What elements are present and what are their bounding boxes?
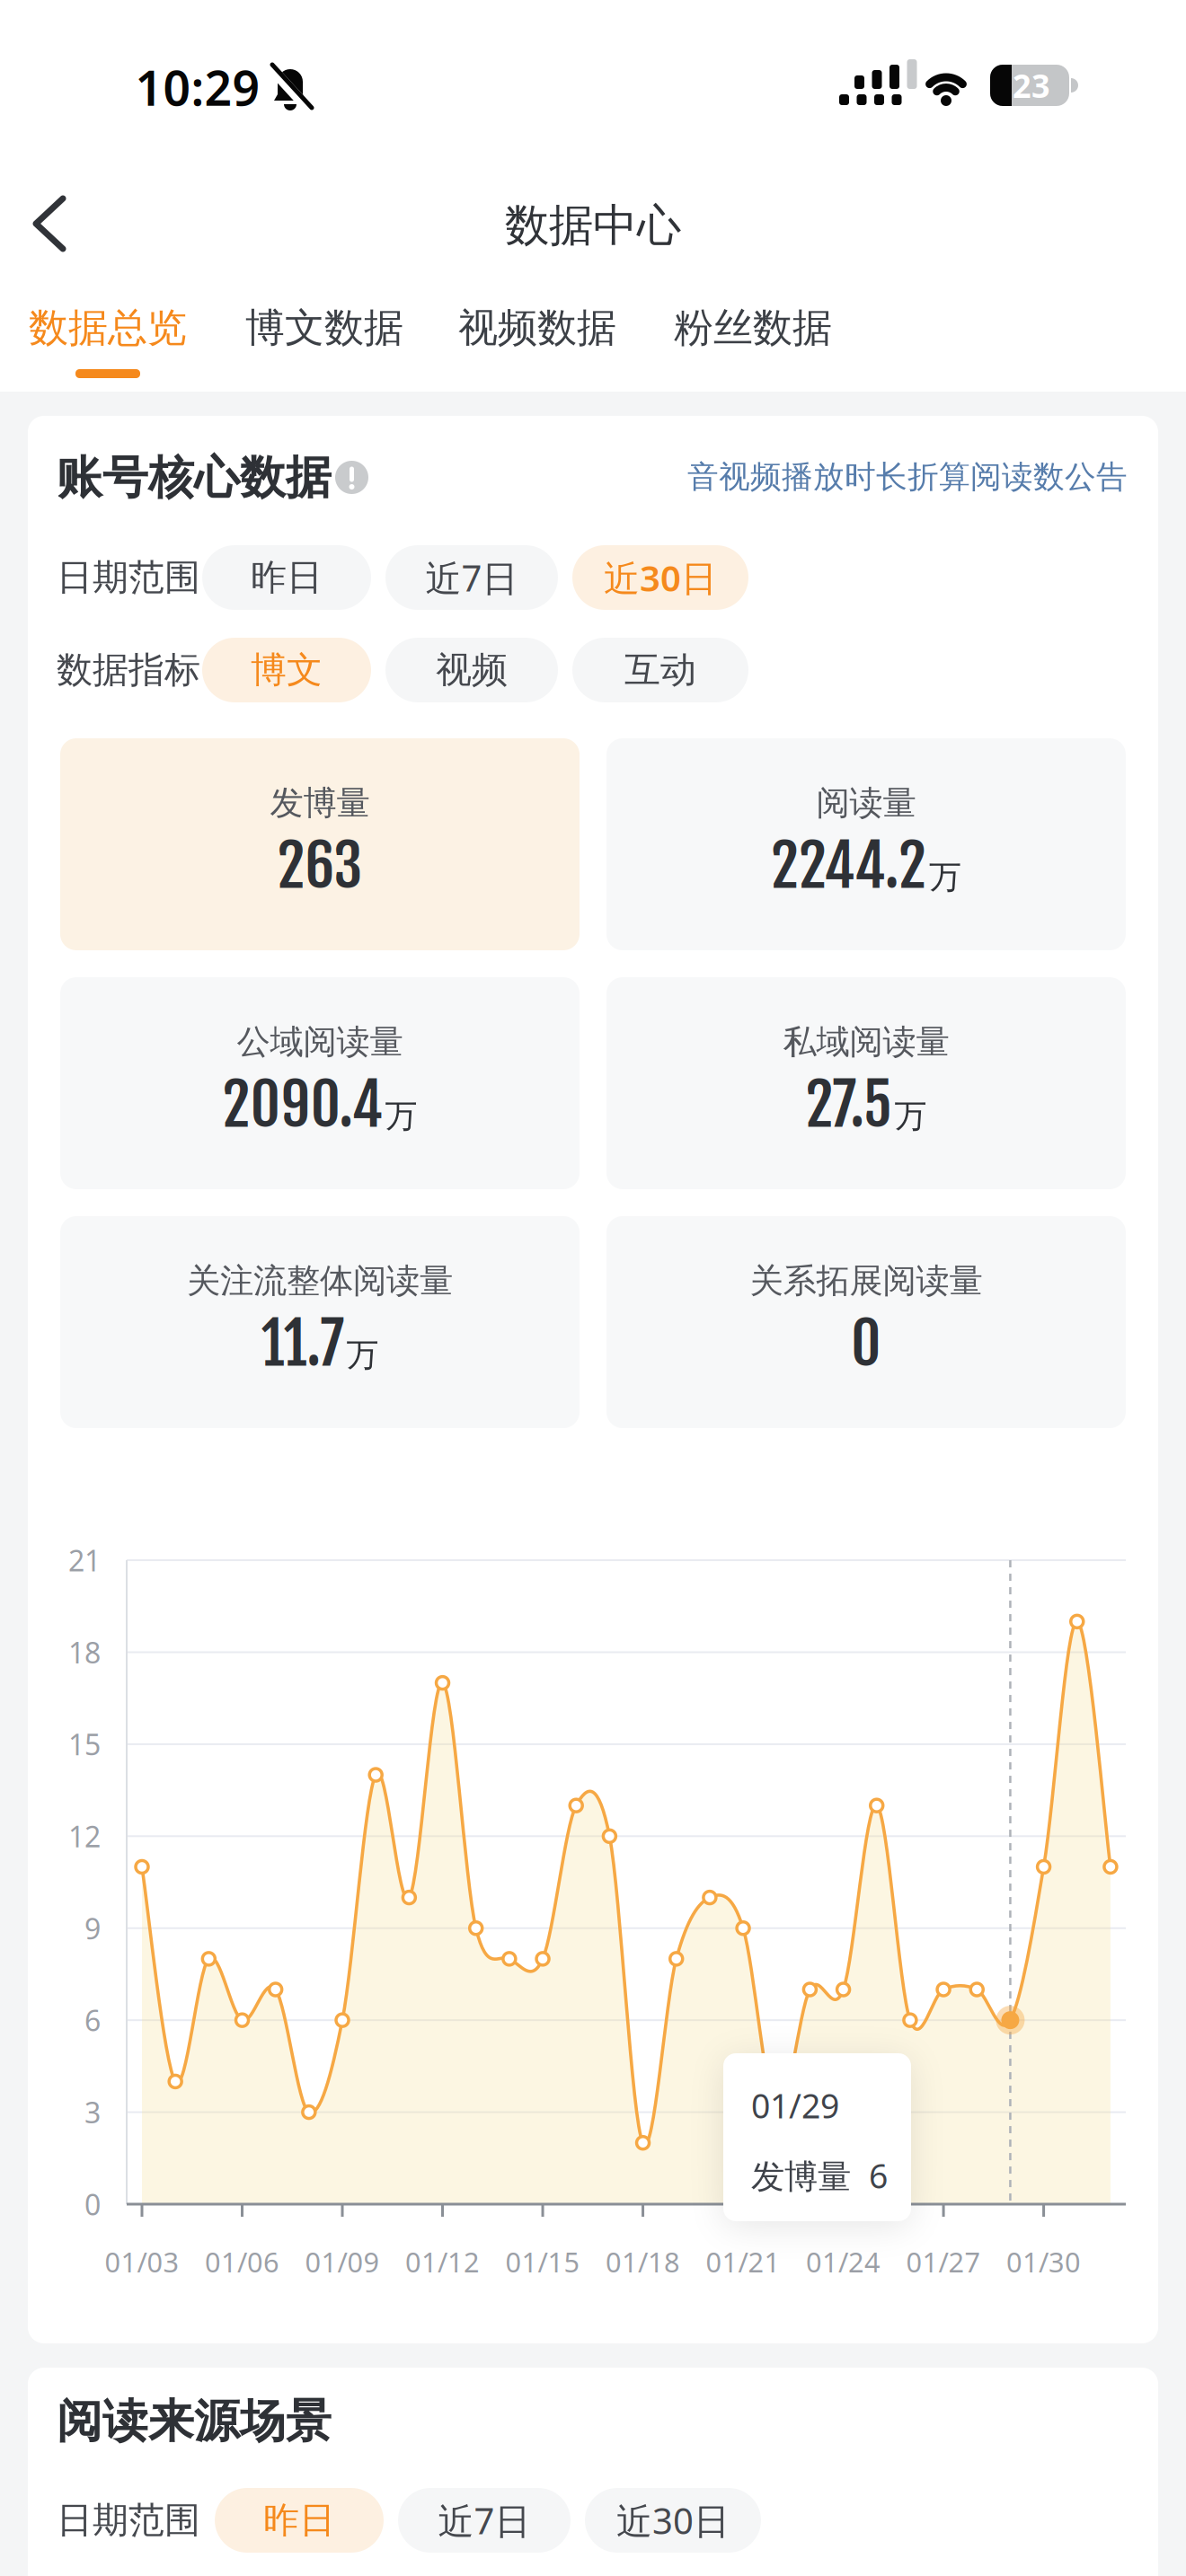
button[interactable]: 互动 <box>572 638 748 702</box>
staticText: 私域阅读量 <box>783 1021 949 1063</box>
staticText: 粉丝数据 <box>674 304 832 352</box>
staticText: 01/15 <box>505 2243 580 2280</box>
staticText: 近30日 <box>604 554 717 601</box>
button[interactable]: 音视频播放时长折算阅读数公告 <box>687 458 1128 496</box>
staticText: 01/06 <box>205 2243 279 2280</box>
staticText: 9 <box>84 1909 101 1947</box>
staticText: 发博量 <box>270 782 370 824</box>
staticText: 日期范围 <box>57 2498 200 2542</box>
staticText: 263 <box>277 829 363 902</box>
staticText: 3 <box>84 2093 101 2131</box>
staticText: 0 <box>851 1307 881 1380</box>
staticText: 10:29 <box>135 55 260 119</box>
staticText: 视频 <box>436 648 508 692</box>
button[interactable]: 数据总览 <box>29 303 187 382</box>
button[interactable]: 视频数据 <box>458 303 616 353</box>
staticText: 2244.2 <box>771 829 926 902</box>
staticText: 01/12 <box>405 2243 480 2280</box>
button[interactable]: 近30日 <box>572 545 748 610</box>
button[interactable]: 关注流整体阅读量 <box>60 1216 580 1428</box>
staticText: 21 <box>68 1541 101 1579</box>
button[interactable]: 近7日 <box>385 545 558 610</box>
button[interactable]: 近30日 <box>585 2488 761 2553</box>
staticText: 阅读量 <box>816 782 916 824</box>
staticText: 6 <box>84 2001 101 2039</box>
staticText: 博文 <box>251 648 323 692</box>
staticText: 阅读来源场景 <box>57 2394 332 2449</box>
staticText: 数据总览 <box>29 304 187 352</box>
staticText: 01/24 <box>806 2243 881 2280</box>
staticText: 27.5 <box>805 1068 892 1141</box>
staticText: 01/27 <box>906 2243 981 2280</box>
staticText: 账号核心数据 <box>57 450 332 506</box>
staticText: 23 <box>1013 64 1050 107</box>
button[interactable]: 阅读量 <box>606 738 1126 950</box>
staticText: 11.7 <box>261 1307 344 1380</box>
staticText: 01/18 <box>606 2243 680 2280</box>
staticText: 0 <box>84 2185 101 2223</box>
staticText: 近7日 <box>425 554 518 601</box>
button[interactable]: 粉丝数据 <box>674 303 832 353</box>
staticText: 日期范围 <box>57 555 200 600</box>
button[interactable]: 昨日 <box>202 545 371 610</box>
button[interactable]: 发博量 <box>60 738 580 950</box>
button[interactable]: 视频 <box>385 638 558 702</box>
button[interactable]: 博文数据 <box>245 303 403 353</box>
staticText: 01/09 <box>305 2243 380 2280</box>
button[interactable]: Info <box>335 461 368 494</box>
staticText: 2090.4 <box>222 1068 382 1141</box>
staticText: 互动 <box>624 648 696 692</box>
staticText: 视频数据 <box>458 304 616 352</box>
button[interactable]: 昨日 <box>215 2488 384 2553</box>
staticText: 01/21 <box>706 2243 780 2280</box>
staticText: 博文数据 <box>245 304 403 352</box>
staticText: 12 <box>68 1817 101 1855</box>
staticText: 01/30 <box>1006 2243 1081 2280</box>
staticText: 音视频播放时长折算阅读数公告 <box>687 458 1128 496</box>
staticText: 公域阅读量 <box>237 1021 403 1063</box>
staticText: 近7日 <box>438 2496 531 2544</box>
button[interactable]: 近7日 <box>398 2488 571 2553</box>
staticText: 昨日 <box>251 555 323 600</box>
staticText: 昨日 <box>263 2498 335 2542</box>
staticText: 15 <box>68 1725 101 1763</box>
staticText: 万 <box>346 1335 379 1375</box>
button[interactable]: 关系拓展阅读量 <box>606 1216 1126 1428</box>
staticText: 发博量 6 <box>751 2153 888 2198</box>
button[interactable]: 博文 <box>202 638 371 702</box>
staticText: 01/29 <box>751 2083 839 2128</box>
staticText: 万 <box>929 857 961 897</box>
staticText: 18 <box>68 1633 101 1671</box>
button[interactable]: Back <box>27 192 81 255</box>
staticText: 01/03 <box>105 2243 179 2280</box>
staticText: 万 <box>894 1096 927 1136</box>
staticText: 万 <box>385 1096 417 1136</box>
staticText: 数据指标 <box>57 648 200 692</box>
staticText: 关注流整体阅读量 <box>187 1260 453 1301</box>
button[interactable]: 私域阅读量 <box>606 977 1126 1189</box>
staticText: 数据中心 <box>505 198 681 253</box>
button[interactable]: 公域阅读量 <box>60 977 580 1189</box>
staticText: 关系拓展阅读量 <box>750 1260 982 1301</box>
staticText: 近30日 <box>616 2496 730 2544</box>
